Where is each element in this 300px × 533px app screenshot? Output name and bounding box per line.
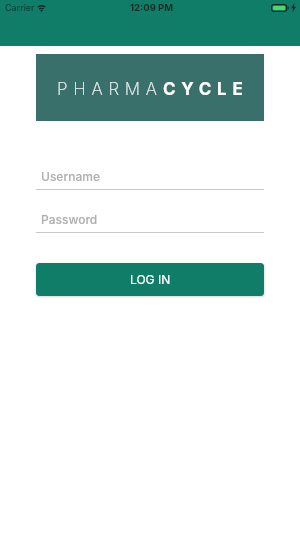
- button[interactable]: Username: [36, 169, 264, 190]
- staticText: LOG IN: [130, 272, 171, 287]
- staticText: Carrier: [5, 2, 35, 13]
- button[interactable]: Password: [36, 212, 264, 233]
- button[interactable]: LOG IN: [36, 263, 264, 296]
- other: Wi-Fi signal: [36, 3, 47, 11]
- staticText: CYCLE: [163, 79, 249, 100]
- other: Battery charging: [271, 4, 289, 12]
- staticText: Username: [41, 169, 100, 184]
- staticText: Password: [41, 212, 98, 227]
- staticText: 12:09 PM: [130, 2, 174, 13]
- staticText: PHARMA: [57, 79, 163, 100]
- button[interactable]: PHARMA: [36, 54, 264, 121]
